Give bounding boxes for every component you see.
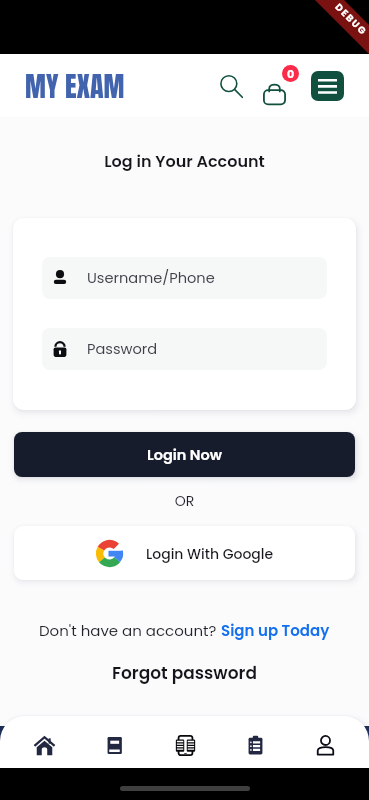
- button[interactable]: Menu: [311, 71, 344, 101]
- staticText: Password: [87, 339, 158, 359]
- button[interactable]: Home: [22, 716, 66, 768]
- button[interactable]: Reader: [163, 716, 207, 768]
- button[interactable]: Password: [42, 328, 327, 370]
- staticText: DEBUG: [332, 0, 369, 39]
- staticText: Login With Google: [146, 544, 274, 564]
- button[interactable]: Forgot password: [112, 661, 257, 685]
- button[interactable]: Username/Phone: [42, 257, 327, 299]
- staticText: Login Now: [147, 445, 222, 465]
- button[interactable]: Books: [92, 716, 136, 768]
- button[interactable]: Sign up Today: [221, 620, 330, 641]
- staticText: MY EXAM: [25, 65, 125, 107]
- staticText: Don't have an account?: [39, 620, 221, 641]
- button[interactable]: Cart: [262, 65, 302, 107]
- button[interactable]: Search: [213, 68, 249, 104]
- staticText: Sign up Today: [221, 620, 330, 641]
- button[interactable]: Tests: [233, 716, 277, 768]
- button[interactable]: Login Now: [14, 432, 355, 477]
- staticText: OR: [0, 491, 369, 511]
- button[interactable]: Login With Google: [14, 526, 355, 580]
- staticText: Forgot password: [112, 661, 257, 685]
- staticText: Username/Phone: [87, 268, 215, 288]
- staticText: Log in Your Account: [0, 150, 369, 172]
- staticText: 0: [287, 66, 295, 81]
- button[interactable]: Profile: [303, 716, 347, 768]
